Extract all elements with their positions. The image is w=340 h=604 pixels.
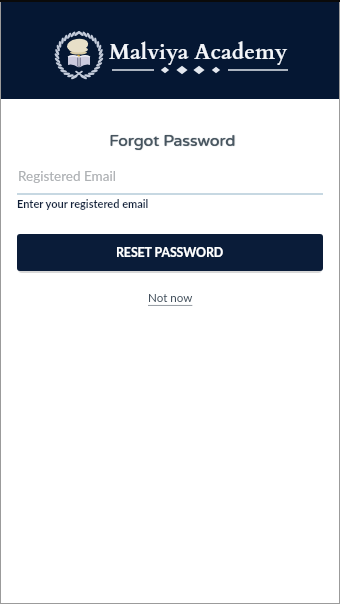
staticText: Malviya Academy <box>109 38 288 67</box>
staticText: Not now <box>148 291 193 305</box>
button[interactable]: Registered Email <box>17 167 323 194</box>
button[interactable]: Not now <box>140 287 200 309</box>
button[interactable]: RESET PASSWORD <box>17 234 323 271</box>
staticText: RESET PASSWORD <box>116 245 224 260</box>
staticText: Enter your registered email <box>17 197 149 210</box>
staticText: Forgot Password <box>2 131 340 150</box>
staticText: Registered Email <box>18 168 116 184</box>
